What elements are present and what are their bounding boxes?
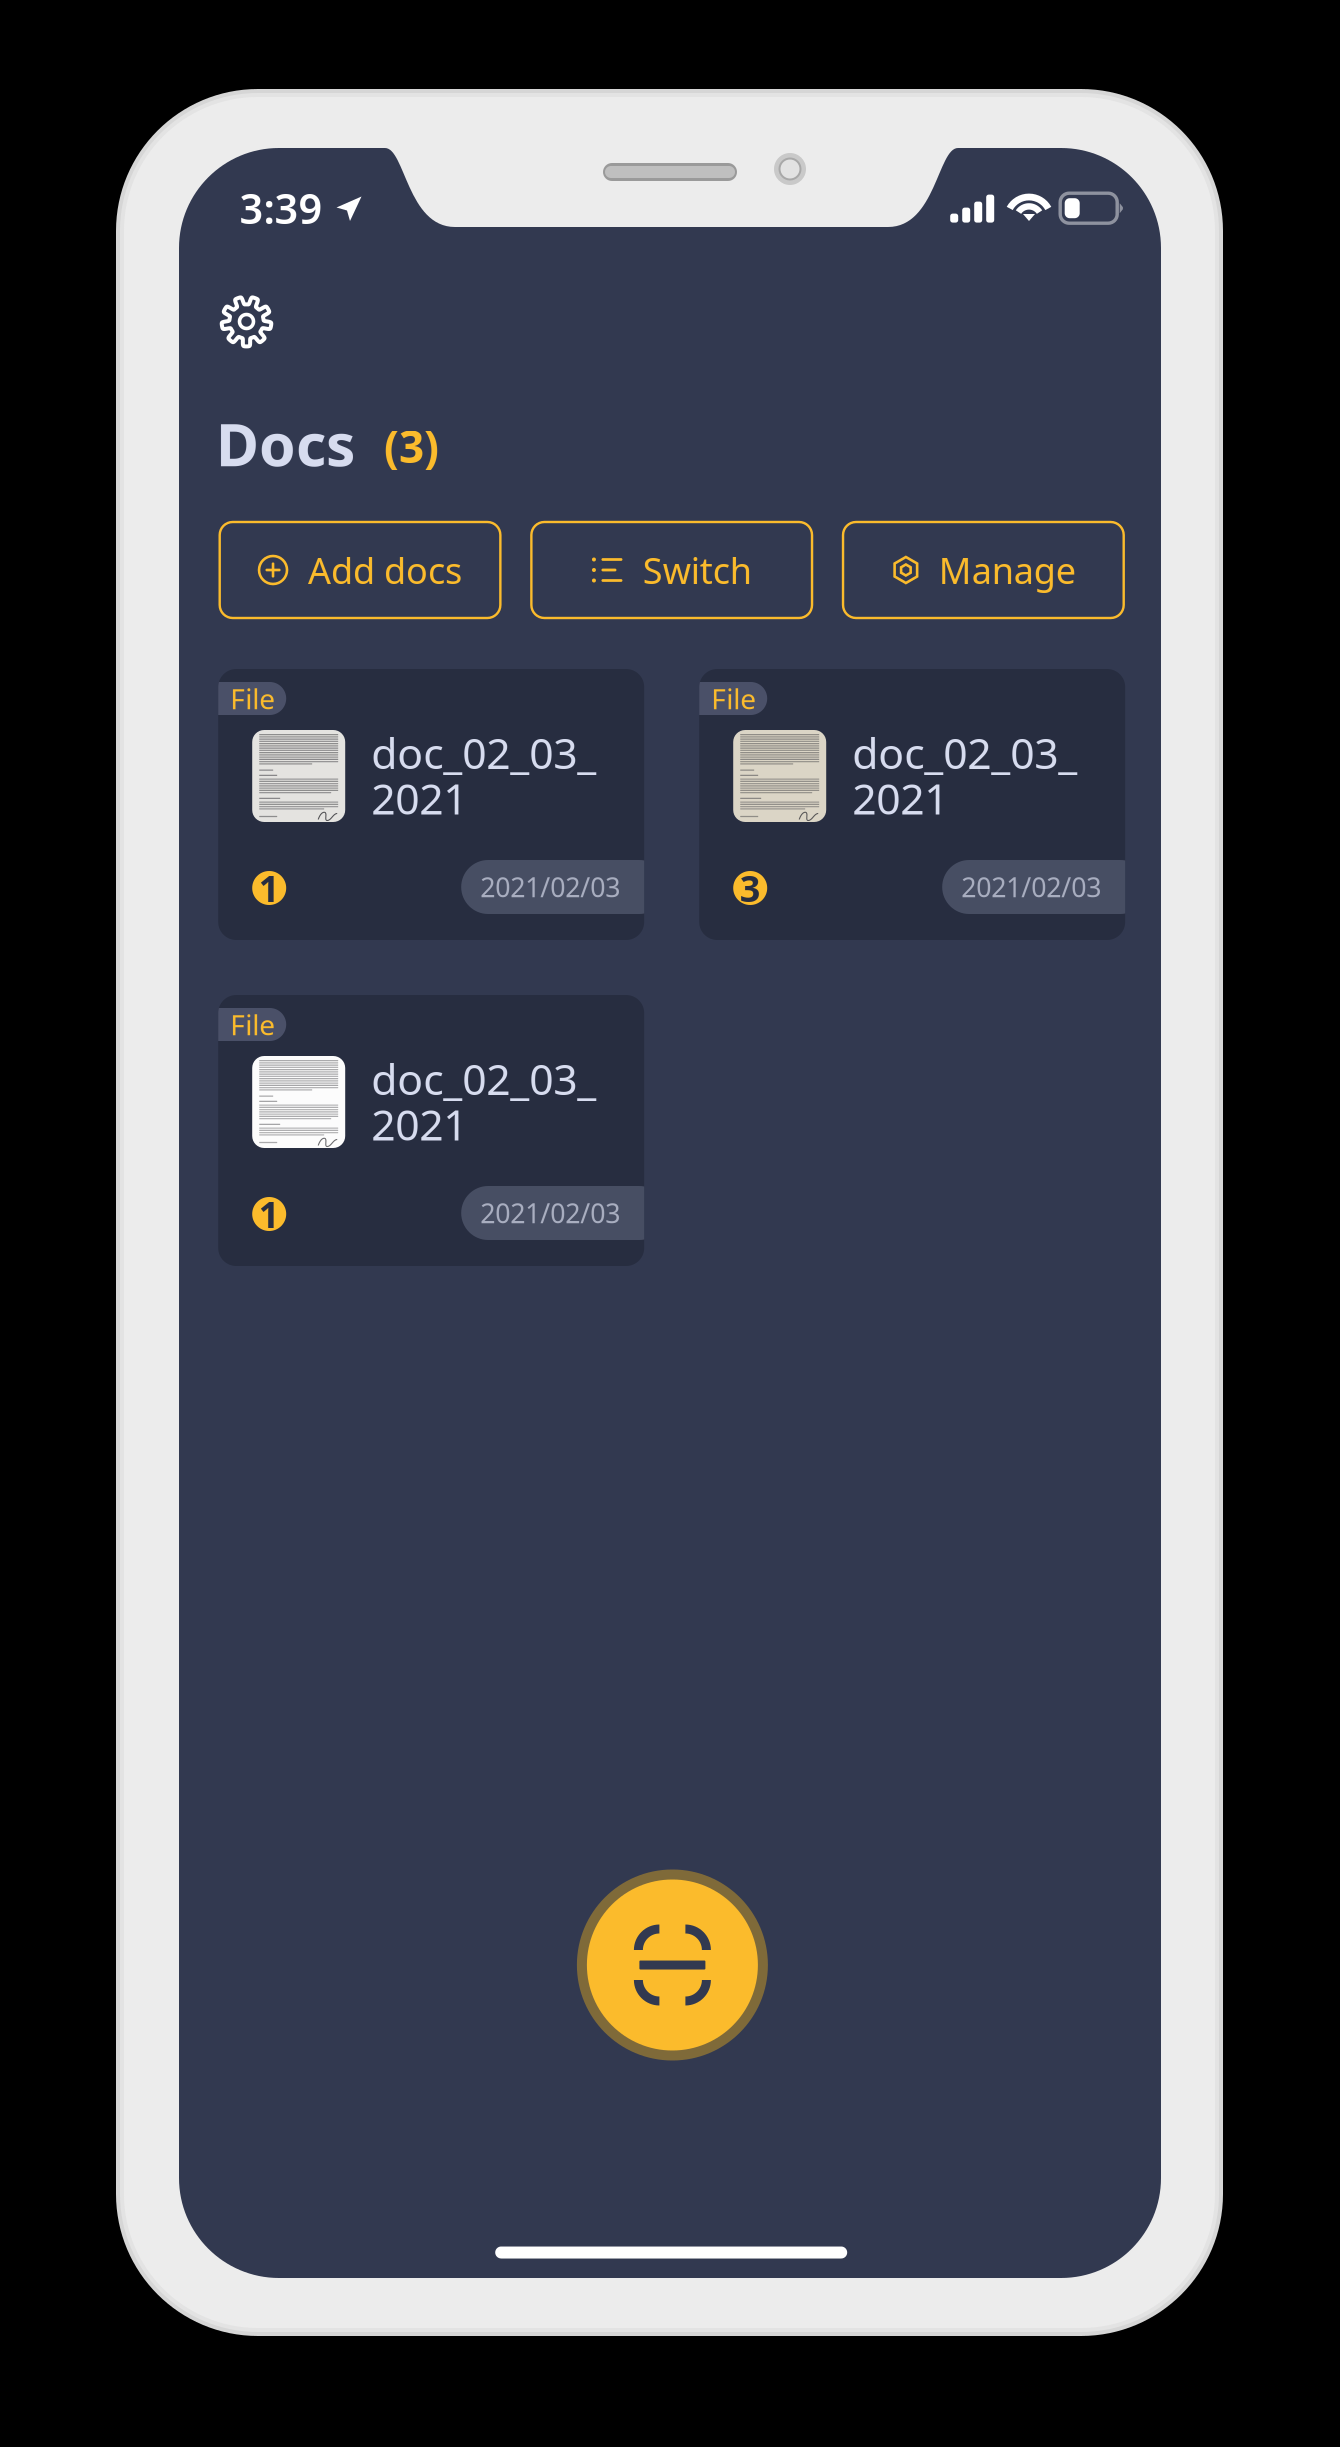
staticText: Add docs bbox=[308, 546, 462, 594]
button[interactable]: Scan document bbox=[577, 1869, 768, 2060]
staticText: 3:39 bbox=[239, 180, 322, 235]
button[interactable]: Switch bbox=[531, 522, 812, 618]
button[interactable]: Settings bbox=[197, 272, 295, 370]
button[interactable]: Manage bbox=[843, 522, 1124, 618]
staticText: Switch bbox=[643, 546, 752, 594]
staticText: Docs bbox=[216, 405, 355, 482]
button[interactable]: File bbox=[218, 669, 644, 940]
staticText: (3) bbox=[384, 417, 439, 475]
staticText: 2021 bbox=[852, 770, 948, 826]
staticText: 1 bbox=[259, 1190, 280, 1238]
staticText: 2021 bbox=[371, 1096, 467, 1152]
staticText: Manage bbox=[939, 546, 1076, 594]
staticText: File bbox=[711, 680, 756, 717]
staticText: 1 bbox=[259, 864, 280, 912]
staticText: File bbox=[230, 1006, 275, 1043]
button[interactable]: Add docs bbox=[220, 522, 500, 618]
button[interactable]: File bbox=[699, 669, 1125, 940]
staticText: 2021/02/03 bbox=[961, 869, 1101, 905]
button[interactable]: File bbox=[218, 995, 644, 1266]
staticText: 2021/02/03 bbox=[480, 869, 620, 905]
staticText: doc_02_03_ bbox=[371, 724, 596, 781]
staticText: 3 bbox=[740, 864, 761, 912]
staticText: doc_02_03_ bbox=[371, 1050, 596, 1107]
staticText: 2021/02/03 bbox=[480, 1195, 620, 1231]
staticText: 2021 bbox=[371, 770, 467, 826]
staticText: doc_02_03_ bbox=[852, 724, 1077, 781]
staticText: File bbox=[230, 680, 275, 717]
